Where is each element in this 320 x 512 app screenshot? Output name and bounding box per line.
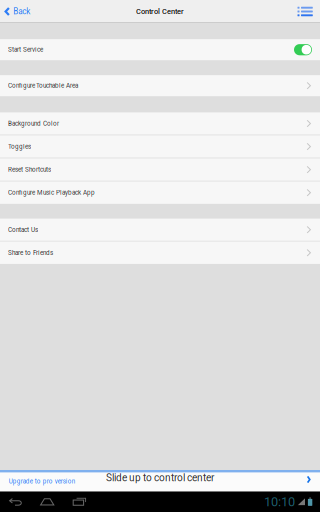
staticText: Upgrade to pro version bbox=[9, 478, 75, 485]
button[interactable]: Open control center bbox=[0, 470, 320, 484]
button[interactable]: Configure Music Playback App bbox=[0, 182, 320, 204]
staticText: Slide up to control center bbox=[106, 472, 214, 484]
button[interactable]: Menu bbox=[289, 0, 320, 23]
staticText: Reset Shortcuts bbox=[8, 166, 51, 173]
button[interactable]: Upgrade to pro version bbox=[0, 470, 75, 485]
staticText: Background Color bbox=[8, 120, 59, 127]
staticText: Share to Friends bbox=[8, 249, 53, 256]
staticText: Contact Us bbox=[8, 226, 38, 233]
staticText: Configure Music Playback App bbox=[8, 189, 95, 196]
staticText: Configure Touchable Area bbox=[8, 82, 78, 89]
button[interactable]: Home bbox=[0, 498, 54, 505]
staticText: Control Center bbox=[136, 7, 184, 16]
staticText: Toggles bbox=[8, 143, 31, 150]
button[interactable]: Configure Touchable Area bbox=[0, 75, 320, 96]
button[interactable]: Start Service bbox=[294, 44, 312, 55]
button[interactable]: Recents bbox=[0, 498, 86, 506]
button[interactable]: Toggles bbox=[0, 135, 320, 158]
button[interactable]: Reset Shortcuts bbox=[0, 158, 320, 181]
staticText: Start Service bbox=[8, 46, 43, 53]
button[interactable]: Back bbox=[0, 498, 22, 506]
button[interactable]: Back bbox=[0, 0, 37, 23]
staticText: 10:10 bbox=[264, 494, 295, 509]
button[interactable]: Slide up to control center bbox=[0, 470, 320, 491]
button[interactable]: Share to Friends bbox=[0, 242, 320, 264]
button[interactable]: Background Color bbox=[0, 112, 320, 135]
button[interactable]: Contact Us bbox=[0, 219, 320, 241]
staticText: Back bbox=[13, 7, 30, 16]
